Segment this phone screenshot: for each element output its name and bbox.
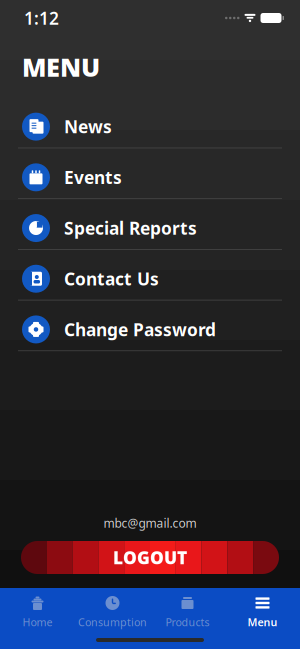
button[interactable]: Contact Us [0, 258, 300, 308]
staticText: Change Password [64, 318, 216, 341]
button[interactable]: Products [150, 588, 225, 633]
staticText: Consumption [78, 615, 147, 629]
staticText: Special Reports [64, 216, 197, 239]
button[interactable]: Menu [225, 588, 300, 633]
button[interactable]: LOGOUT [0, 541, 300, 574]
button[interactable]: Change Password [0, 308, 300, 359]
staticText: Products [165, 615, 209, 629]
button[interactable]: News [0, 106, 300, 156]
staticText: Home [22, 615, 52, 629]
staticText: News [64, 115, 112, 138]
staticText: MENU [22, 50, 100, 84]
button[interactable]: Events [0, 156, 300, 207]
staticText: 1:12 [24, 6, 59, 29]
staticText: mbc@gmail.com [103, 515, 196, 531]
staticText: Menu [247, 615, 277, 629]
staticText: Events [64, 166, 122, 189]
button[interactable]: Special Reports [0, 207, 300, 258]
button[interactable]: Home [0, 588, 75, 633]
button[interactable]: Consumption [75, 588, 150, 633]
staticText: LOGOUT [113, 546, 187, 569]
staticText: Contact Us [64, 267, 159, 290]
